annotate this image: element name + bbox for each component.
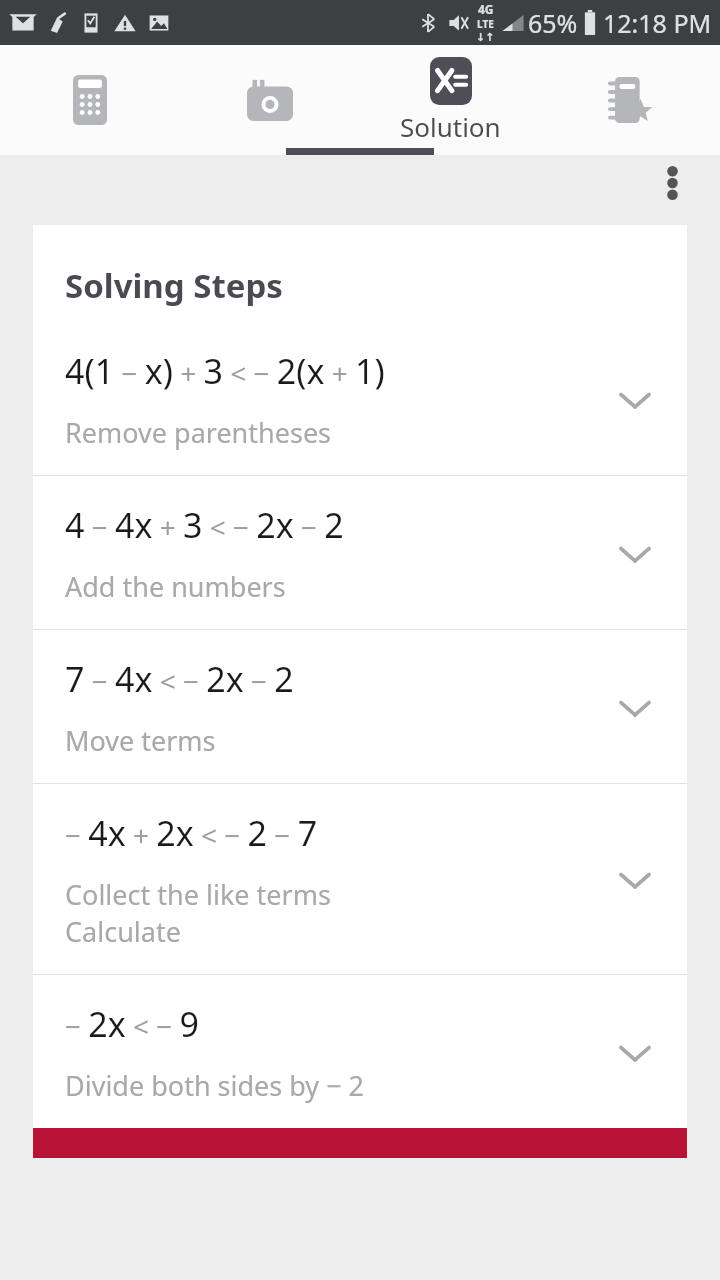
staticText: Add the numbers — [65, 568, 286, 605]
staticText: Move terms — [65, 722, 216, 759]
staticText: 12:18 PM — [603, 6, 712, 40]
button[interactable]: 4 − 4x + 3 < − 2x − 2 — [33, 476, 687, 629]
button[interactable]: 7 − 4x < − 2x − 2 — [33, 630, 687, 783]
staticText: ↓↑ — [476, 31, 495, 44]
button[interactable]: − 4x + 2x < − 2 − 7 — [33, 784, 687, 974]
button[interactable]: Expand step — [607, 680, 663, 736]
staticText: LTE — [477, 17, 494, 31]
staticText: Solution — [400, 109, 501, 144]
staticText: Calculate — [65, 913, 181, 950]
staticText: Solving Steps — [65, 263, 283, 308]
staticText: − 4x + 2x < − 2 − 7 — [65, 810, 318, 856]
staticText: 65% — [528, 6, 578, 40]
staticText: Divide both sides by − 2 — [65, 1067, 365, 1104]
staticText: Collect the like terms — [65, 876, 331, 913]
staticText: − 2x < − 9 — [65, 1001, 200, 1047]
button[interactable]: Expand step — [607, 372, 663, 428]
staticText: 4(1 − x) + 3 < − 2(x + 1) — [65, 348, 385, 394]
button[interactable]: Expand step — [607, 1025, 663, 1081]
button[interactable]: Camera — [180, 45, 360, 155]
button[interactable]: Expand step — [607, 852, 663, 908]
button[interactable]: Solution — [360, 45, 540, 155]
staticText: 4G — [478, 1, 494, 17]
staticText: Remove parentheses — [65, 414, 332, 451]
button[interactable]: Bookmarks — [540, 45, 720, 155]
button[interactable]: More options — [650, 161, 694, 205]
button[interactable]: Calculator — [0, 45, 180, 155]
button[interactable]: Expand step — [607, 526, 663, 582]
button[interactable]: − 2x < − 9 — [33, 975, 687, 1128]
button[interactable]: 4(1 − x) + 3 < − 2(x + 1) — [33, 322, 687, 475]
staticText: 7 − 4x < − 2x − 2 — [65, 656, 294, 702]
staticText: 4 − 4x + 3 < − 2x − 2 — [65, 502, 344, 548]
